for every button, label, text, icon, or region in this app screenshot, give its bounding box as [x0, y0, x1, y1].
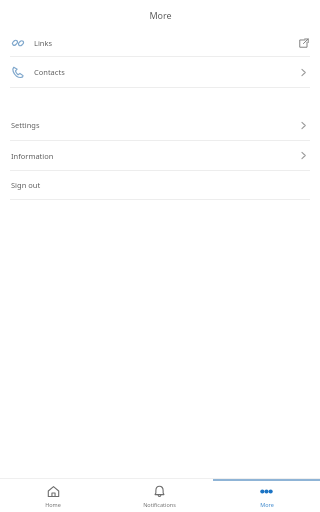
- button[interactable]: Contacts: [0, 57, 320, 87]
- button[interactable]: Notifications: [106, 479, 213, 512]
- button[interactable]: Information: [0, 141, 320, 170]
- button[interactable]: Home: [0, 479, 106, 512]
- staticText: Links: [34, 38, 53, 48]
- button[interactable]: Settings: [0, 110, 320, 140]
- button[interactable]: More: [213, 479, 320, 512]
- staticText: Information: [11, 151, 54, 161]
- other: Open links externally: [298, 38, 309, 49]
- button[interactable]: Sign out: [0, 171, 320, 199]
- staticText: Settings: [11, 120, 40, 130]
- other: Open settings: [298, 120, 309, 131]
- staticText: More: [149, 9, 172, 21]
- staticText: Sign out: [11, 180, 41, 190]
- other: Open information: [298, 150, 309, 161]
- staticText: Home: [45, 501, 61, 508]
- other: Open contacts: [298, 67, 309, 78]
- staticText: Notifications: [143, 501, 176, 508]
- staticText: Contacts: [34, 67, 65, 77]
- staticText: More: [260, 501, 274, 508]
- button[interactable]: Links: [0, 30, 320, 56]
